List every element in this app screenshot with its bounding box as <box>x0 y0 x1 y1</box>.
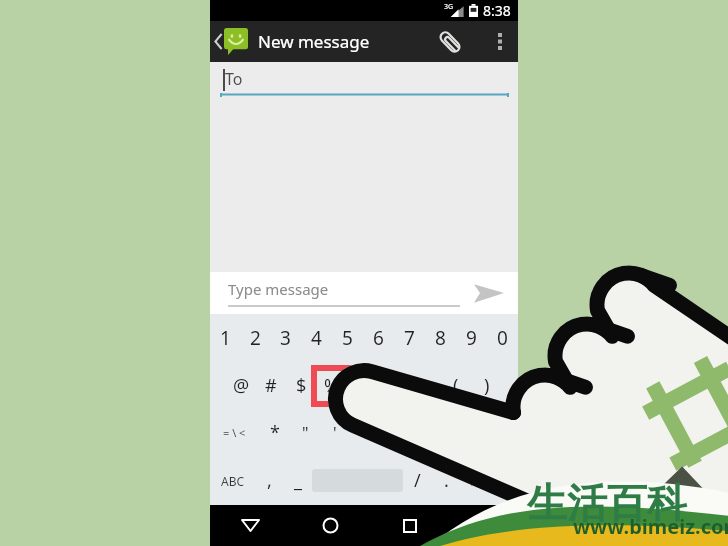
staticText: " <box>302 422 309 444</box>
staticText: 2 <box>250 325 261 351</box>
button[interactable]: . <box>432 456 461 505</box>
button[interactable]: Recent apps <box>370 505 450 546</box>
staticText: 0 <box>497 325 508 351</box>
staticText: ' <box>333 422 337 444</box>
staticText: ABC <box>221 473 245 489</box>
staticText: 7 <box>404 325 415 351</box>
staticText: 6 <box>373 325 384 351</box>
button[interactable]: * <box>378 362 409 409</box>
button[interactable]: _ <box>283 456 312 505</box>
button[interactable]: * <box>259 409 290 456</box>
button[interactable]: Back <box>210 505 290 546</box>
button[interactable]: Backspace <box>470 409 518 456</box>
staticText: 4 <box>311 325 322 351</box>
staticText: 9 <box>466 325 477 351</box>
button[interactable]: # <box>256 362 286 409</box>
button[interactable]: 7 <box>394 314 425 362</box>
button[interactable]: ( <box>440 362 471 409</box>
staticText: 8 <box>435 325 446 351</box>
staticText: % <box>324 373 339 398</box>
button[interactable]: ? <box>440 409 470 456</box>
button[interactable]: & <box>347 362 378 409</box>
staticText: 8:38 <box>483 1 511 20</box>
button[interactable]: 2 <box>240 314 270 362</box>
staticText: 3 <box>280 325 291 351</box>
button[interactable]: 9 <box>456 314 487 362</box>
button[interactable]: 0 <box>487 314 518 362</box>
staticText: = \ < <box>223 425 246 440</box>
staticText: / <box>414 468 421 493</box>
button[interactable]: 4 <box>301 314 332 362</box>
staticText: Return <box>470 473 509 489</box>
button[interactable]: " <box>290 409 320 456</box>
staticText: New message <box>258 30 370 53</box>
staticText: * <box>389 373 399 398</box>
button[interactable]: ; <box>380 409 410 456</box>
staticText: + <box>419 373 430 398</box>
staticText: To <box>225 68 243 90</box>
staticText: # <box>265 373 277 398</box>
staticText: 生活百科 <box>527 478 687 528</box>
button[interactable]: 8 <box>425 314 456 362</box>
button[interactable]: Navigate up <box>212 28 250 55</box>
button[interactable]: @ <box>226 362 256 409</box>
button[interactable]: / <box>403 456 432 505</box>
button[interactable]: Keyboard <box>450 505 518 546</box>
staticText: ) <box>484 373 490 398</box>
button[interactable]: $ <box>286 362 316 409</box>
button[interactable]: ABC <box>210 456 255 505</box>
button[interactable]: Attach <box>429 21 471 62</box>
button[interactable]: Send <box>460 272 518 314</box>
button[interactable]: ' <box>320 409 350 456</box>
staticText: . <box>444 468 449 493</box>
staticText: * <box>270 420 280 445</box>
staticText: _ <box>294 468 302 493</box>
button[interactable]: 6 <box>363 314 394 362</box>
staticText: : <box>363 422 368 444</box>
staticText: $ <box>296 373 307 398</box>
staticText: & <box>356 373 370 398</box>
staticText: ( <box>453 373 459 398</box>
staticText: , <box>267 468 272 493</box>
button[interactable]: Home <box>290 505 370 546</box>
button[interactable]: , <box>255 456 283 505</box>
button[interactable]: Return <box>461 456 518 505</box>
button[interactable]: 5 <box>332 314 363 362</box>
staticText: 3G <box>444 2 454 12</box>
button[interactable]: : <box>350 409 380 456</box>
staticText: @ <box>233 373 250 398</box>
staticText: Type message <box>228 279 329 299</box>
staticText: 1 <box>220 325 231 351</box>
button[interactable]: More options <box>488 21 512 62</box>
button[interactable]: = \ < <box>210 409 259 456</box>
button[interactable]: 3 <box>270 314 301 362</box>
button[interactable]: + <box>409 362 440 409</box>
staticText: ; <box>393 422 398 444</box>
button[interactable]: ! <box>410 409 440 456</box>
button[interactable]: % <box>316 362 347 409</box>
staticText: www.bimeiz.com <box>573 513 728 540</box>
staticText: 5 <box>342 325 353 351</box>
button[interactable]: ) <box>471 362 502 409</box>
button[interactable]: 1 <box>210 314 240 362</box>
